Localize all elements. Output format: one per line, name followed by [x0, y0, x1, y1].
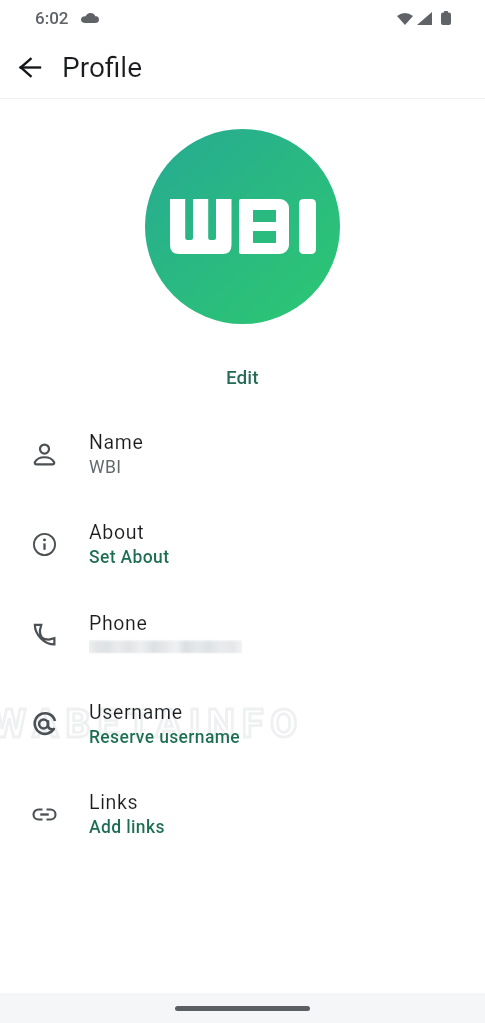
staticText: Links: [89, 791, 139, 814]
staticText: Name: [89, 431, 144, 454]
button[interactable]: Username: [0, 679, 485, 769]
staticText: Username: [89, 701, 183, 724]
staticText: WABETAINFO: [0, 701, 305, 747]
staticText: Profile: [62, 51, 143, 84]
button[interactable]: Links: [0, 769, 485, 859]
staticText: Edit: [226, 366, 259, 388]
staticText: 6:02: [35, 8, 69, 28]
staticText: Set About: [89, 547, 170, 568]
button[interactable]: Name: [0, 409, 485, 499]
button[interactable]: Profile photo: [145, 129, 340, 324]
button[interactable]: Phone: [0, 589, 485, 679]
staticText: About: [89, 521, 145, 544]
staticText: Reserve username: [89, 727, 241, 748]
button[interactable]: Edit: [208, 361, 277, 393]
staticText: Add links: [89, 817, 165, 838]
staticText: WBI: [89, 457, 122, 478]
button[interactable]: About: [0, 499, 485, 589]
staticText: Phone: [89, 612, 148, 635]
button[interactable]: Back: [6, 43, 54, 91]
